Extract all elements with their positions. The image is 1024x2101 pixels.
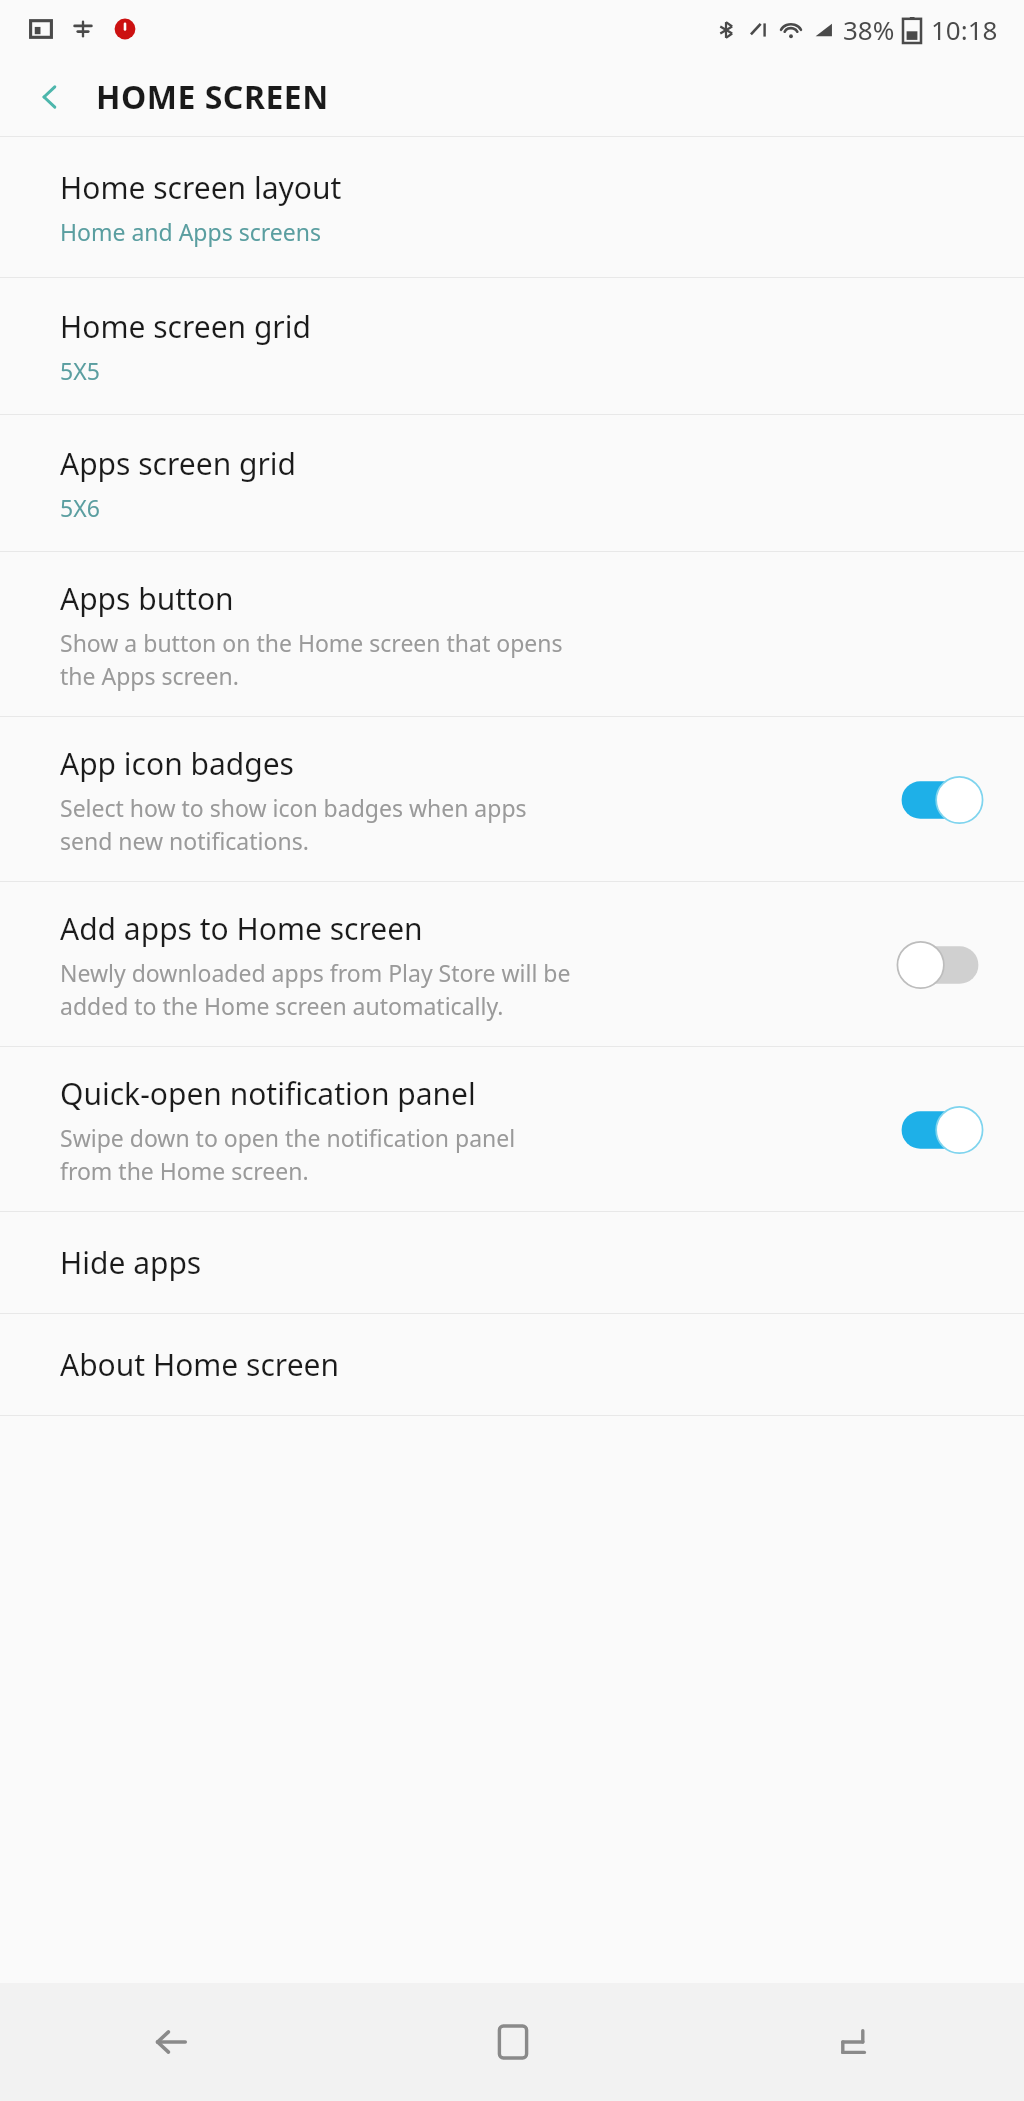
staticText: 5X6	[60, 492, 100, 523]
button[interactable]: Recents	[0, 1983, 342, 2101]
button[interactable]: Toggle off	[892, 939, 988, 991]
button[interactable]: Add apps to Home screen	[0, 882, 1024, 1046]
staticText: Home and Apps screens	[60, 216, 321, 247]
button[interactable]: Toggle on	[892, 774, 988, 826]
staticText: 10:18	[931, 12, 998, 47]
button[interactable]: Quick-open notification panel	[0, 1047, 1024, 1211]
staticText: Apps screen grid	[60, 443, 297, 484]
button[interactable]: Back	[683, 1983, 1024, 2101]
staticText: Home screen layout	[60, 167, 342, 208]
button[interactable]: Home	[342, 1983, 683, 2101]
staticText: App icon badges	[60, 743, 294, 784]
staticText: Home screen grid	[60, 306, 311, 347]
button[interactable]: Toggle on	[892, 1104, 988, 1156]
staticText: Quick-open notification panel	[60, 1073, 476, 1114]
staticText: Select how to show icon badges when apps…	[60, 792, 527, 857]
staticText: Show a button on the Home screen that op…	[60, 627, 563, 692]
staticText: Add apps to Home screen	[60, 908, 423, 949]
staticText: Swipe down to open the notification pane…	[60, 1122, 516, 1187]
button[interactable]: Home screen grid	[0, 278, 1024, 414]
button[interactable]: App icon badges	[0, 717, 1024, 881]
button[interactable]: Back	[22, 69, 78, 125]
staticText: 5X5	[60, 355, 100, 386]
staticText: About Home screen	[60, 1344, 340, 1385]
button[interactable]: Apps screen grid	[0, 415, 1024, 551]
staticText: Newly downloaded apps from Play Store wi…	[60, 957, 571, 1022]
button[interactable]: Hide apps	[0, 1212, 1024, 1313]
button[interactable]: Apps button	[0, 552, 1024, 716]
button[interactable]: About Home screen	[0, 1314, 1024, 1415]
button[interactable]: Home screen layout	[0, 137, 1024, 277]
staticText: Hide apps	[60, 1242, 202, 1283]
staticText: HOME SCREEN	[96, 75, 329, 119]
staticText: Apps button	[60, 578, 234, 619]
staticText: 38%	[843, 12, 895, 47]
